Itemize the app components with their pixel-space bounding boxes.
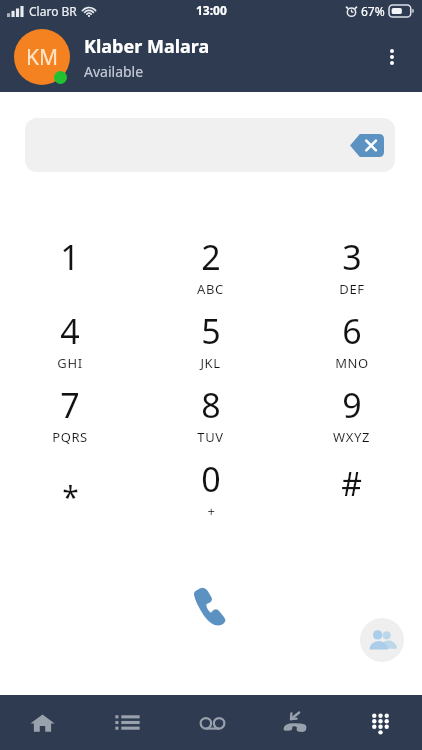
staticText: 1 <box>60 234 80 280</box>
button[interactable]: * <box>0 456 140 536</box>
button[interactable]: Dialpad <box>338 695 422 750</box>
staticText: TUV <box>197 428 224 446</box>
button[interactable]: More options <box>370 35 414 79</box>
button[interactable]: Contacts <box>360 618 404 662</box>
staticText: + <box>207 502 216 520</box>
staticText: 6 <box>342 308 362 354</box>
staticText: 9 <box>342 382 362 428</box>
button[interactable]: Voicemail <box>170 695 254 750</box>
staticText: 0 <box>201 456 221 502</box>
staticText: 2 <box>201 234 221 280</box>
staticText: GHI <box>57 354 83 372</box>
staticText: * <box>62 476 79 517</box>
staticText: ABC <box>197 280 224 298</box>
staticText: # <box>341 462 362 506</box>
staticText: 5 <box>201 308 221 354</box>
staticText: 4 <box>60 308 80 354</box>
staticText: Available <box>84 62 144 81</box>
staticText: DEF <box>339 280 365 298</box>
button[interactable]: 6 <box>281 308 422 382</box>
button[interactable]: 0 <box>140 456 281 536</box>
button[interactable]: Home <box>0 695 85 750</box>
button[interactable]: 2 <box>140 234 281 308</box>
staticText: Klaber Malara <box>84 34 210 59</box>
button[interactable]: 8 <box>140 382 281 456</box>
button[interactable]: # <box>281 456 422 536</box>
staticText: 3 <box>342 234 362 280</box>
button[interactable]: Recents <box>85 695 170 750</box>
staticText: 67% <box>361 3 385 19</box>
staticText: 7 <box>60 382 80 428</box>
staticText: WXYZ <box>333 428 370 446</box>
button[interactable]: 5 <box>140 308 281 382</box>
staticText: MNO <box>335 354 369 372</box>
button[interactable]: 9 <box>281 382 422 456</box>
button[interactable]: 1 <box>0 234 140 308</box>
staticText: Claro BR <box>29 3 77 19</box>
staticText: JKL <box>200 354 221 372</box>
button[interactable]: Call history <box>254 695 338 750</box>
button[interactable]: Backspace <box>345 123 389 167</box>
button[interactable]: 7 <box>0 382 140 456</box>
button[interactable]: 3 <box>281 234 422 308</box>
staticText: 8 <box>201 382 221 428</box>
staticText: KM <box>26 43 59 72</box>
staticText: PQRS <box>52 428 88 446</box>
button[interactable]: Call <box>176 570 246 640</box>
button[interactable]: 4 <box>0 308 140 382</box>
button[interactable]: Backspace <box>25 118 395 172</box>
staticText: 13:00 <box>196 2 227 18</box>
